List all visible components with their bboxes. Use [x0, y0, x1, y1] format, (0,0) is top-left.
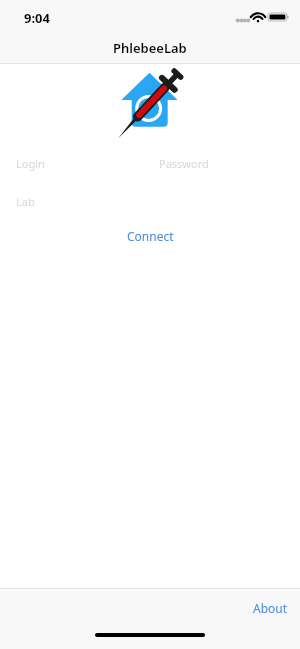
- staticText: Connect: [127, 228, 174, 244]
- staticText: About: [253, 600, 288, 616]
- button[interactable]: About: [239, 591, 300, 626]
- staticText: Login: [16, 156, 45, 171]
- staticText: Lab: [16, 194, 35, 209]
- staticText: Password: [159, 156, 209, 171]
- button[interactable]: Connect: [115, 223, 186, 249]
- staticText: PhlebeeLab: [113, 39, 187, 57]
- staticText: 9:04: [24, 9, 50, 27]
